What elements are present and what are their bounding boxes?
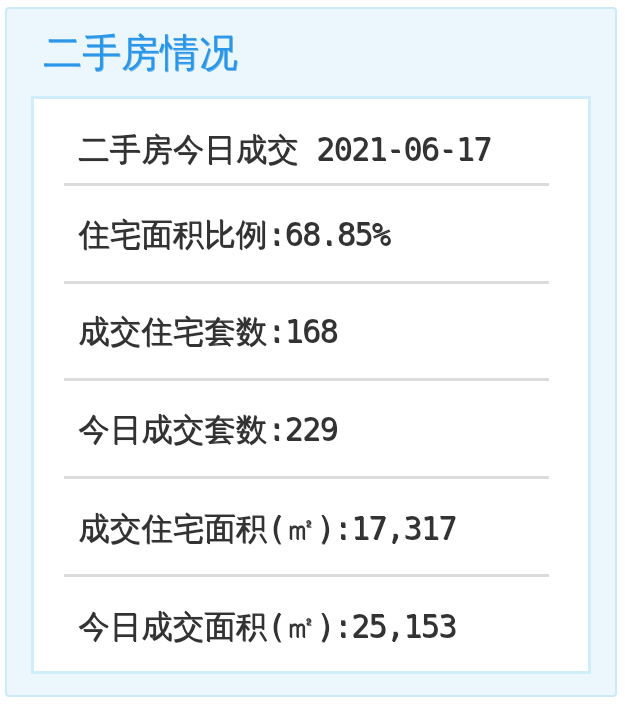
- staticText: 成交住宅套数:168: [78, 312, 337, 352]
- button[interactable]: 成交住宅套数:168: [31, 284, 591, 378]
- button[interactable]: 今日成交套数:229: [31, 381, 591, 476]
- staticText: 今日成交面积(㎡):25,153: [78, 607, 456, 647]
- staticText: 二手房情况: [43, 28, 238, 77]
- staticText: 住宅面积比例:68.85%: [78, 215, 390, 255]
- staticText: 成交住宅面积(㎡):17,317: [78, 509, 456, 549]
- staticText: 二手房今日成交 2021-06-17: [78, 130, 491, 170]
- button[interactable]: 今日成交面积(㎡):25,153: [31, 577, 591, 674]
- button[interactable]: 住宅面积比例:68.85%: [31, 186, 591, 281]
- button[interactable]: 二手房今日成交 2021-06-17: [31, 96, 591, 183]
- staticText: 今日成交套数:229: [78, 410, 337, 450]
- button[interactable]: 成交住宅面积(㎡):17,317: [31, 479, 591, 574]
